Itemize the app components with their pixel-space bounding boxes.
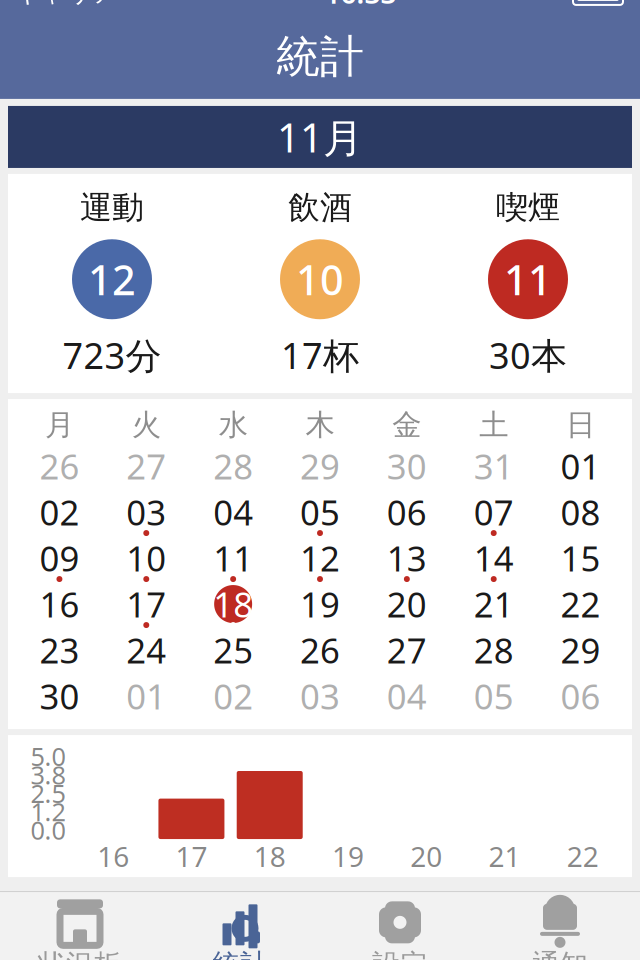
staticText: 22 (567, 837, 599, 875)
button[interactable]: 30 (363, 447, 450, 493)
staticText: 27 (387, 627, 427, 673)
staticText: 12 (300, 535, 340, 581)
button[interactable]: 03 (277, 677, 363, 723)
button[interactable]: 29 (537, 631, 624, 677)
staticText: 08 (561, 489, 601, 535)
button[interactable]: 06 (537, 677, 624, 723)
staticText: 17杯 (281, 331, 359, 379)
staticText: 設定 (372, 947, 428, 960)
button[interactable]: 28 (190, 447, 277, 493)
staticText: 飲酒 (288, 188, 352, 227)
button[interactable]: 01 (537, 447, 624, 493)
button[interactable]: 30 (16, 677, 103, 723)
staticText: 土 (479, 407, 508, 443)
button[interactable]: 26 (277, 631, 363, 677)
staticText: 27 (126, 443, 166, 489)
staticText: 10 (296, 252, 344, 307)
button[interactable]: 11月 (8, 106, 632, 168)
button[interactable]: 15 (537, 539, 624, 585)
button[interactable]: 05 (277, 493, 363, 539)
staticText: 29 (561, 627, 601, 673)
staticText: 18 (254, 837, 286, 875)
staticText: 木 (305, 407, 334, 443)
button[interactable]: 14 (450, 539, 537, 585)
staticText: 15 (561, 535, 601, 581)
staticText: 16 (97, 837, 129, 875)
staticText: 運動 (80, 188, 144, 227)
staticText: 31 (474, 443, 514, 489)
button[interactable]: 08 (537, 493, 624, 539)
staticText: 25 (213, 627, 253, 673)
staticText: 3.8 (30, 758, 65, 791)
button[interactable]: 10 (103, 539, 190, 585)
button[interactable]: 27 (103, 447, 190, 493)
button[interactable]: 11 (190, 539, 277, 585)
button[interactable]: 29 (277, 447, 363, 493)
staticText: 16 (39, 581, 79, 627)
button[interactable]: 04 (190, 493, 277, 539)
staticText: 06 (387, 489, 427, 535)
staticText: 22 (561, 581, 601, 627)
staticText: 喫煙 (496, 188, 560, 227)
staticText: 19 (300, 581, 340, 627)
staticText: 05 (300, 489, 340, 535)
staticText: 01 (126, 673, 166, 719)
staticText: 07 (474, 489, 514, 535)
button[interactable]: 状況板 (0, 893, 160, 960)
staticText: 10 (126, 535, 166, 581)
staticText: 24 (126, 627, 166, 673)
button[interactable]: 13 (363, 539, 450, 585)
staticText: 統計 (212, 947, 268, 960)
staticText: 28 (474, 627, 514, 673)
button[interactable]: 12 (277, 539, 363, 585)
button[interactable]: 20 (363, 585, 450, 631)
button[interactable]: 28 (450, 631, 537, 677)
staticText: 29 (300, 443, 340, 489)
staticText: 21 (489, 837, 521, 875)
staticText: キャリア (14, 0, 118, 8)
button[interactable]: 31 (450, 447, 537, 493)
button[interactable]: 統計 (160, 893, 320, 960)
button[interactable]: 18 (190, 585, 277, 631)
button[interactable]: 17 (103, 585, 190, 631)
button[interactable]: 06 (363, 493, 450, 539)
staticText: 17 (126, 581, 166, 627)
button[interactable]: 05 (450, 677, 537, 723)
button[interactable]: 02 (16, 493, 103, 539)
button[interactable]: 19 (277, 585, 363, 631)
button[interactable]: 09 (16, 539, 103, 585)
staticText: 04 (213, 489, 253, 535)
button[interactable]: 07 (450, 493, 537, 539)
button[interactable]: 26 (16, 447, 103, 493)
staticText: 20 (410, 837, 442, 875)
button[interactable]: 02 (190, 677, 277, 723)
staticText: 30本 (489, 331, 567, 379)
staticText: 5.0 (30, 739, 65, 773)
staticText: 0.0 (30, 813, 65, 847)
button[interactable]: 16 (16, 585, 103, 631)
button[interactable]: 27 (363, 631, 450, 677)
button[interactable]: 04 (363, 677, 450, 723)
button[interactable]: 22 (537, 585, 624, 631)
button[interactable]: 通知 (480, 893, 640, 960)
staticText: 2.5 (30, 776, 65, 810)
staticText: 13 (387, 535, 427, 581)
staticText: 21 (474, 581, 514, 627)
staticText: 金 (392, 407, 421, 443)
staticText: 状況板 (38, 947, 122, 960)
staticText: 11 (504, 252, 552, 307)
staticText: 06 (561, 673, 601, 719)
button[interactable]: 01 (103, 677, 190, 723)
button[interactable]: 設定 (320, 893, 480, 960)
button[interactable]: 21 (450, 585, 537, 631)
staticText: 02 (213, 673, 253, 719)
button[interactable]: 24 (103, 631, 190, 677)
staticText: 26 (39, 443, 79, 489)
staticText: 火 (132, 407, 161, 443)
button[interactable]: 25 (190, 631, 277, 677)
staticText: 23 (39, 627, 79, 673)
button[interactable]: 23 (16, 631, 103, 677)
staticText: 30 (387, 443, 427, 489)
button[interactable]: 03 (103, 493, 190, 539)
staticText: 1.2 (30, 795, 65, 828)
